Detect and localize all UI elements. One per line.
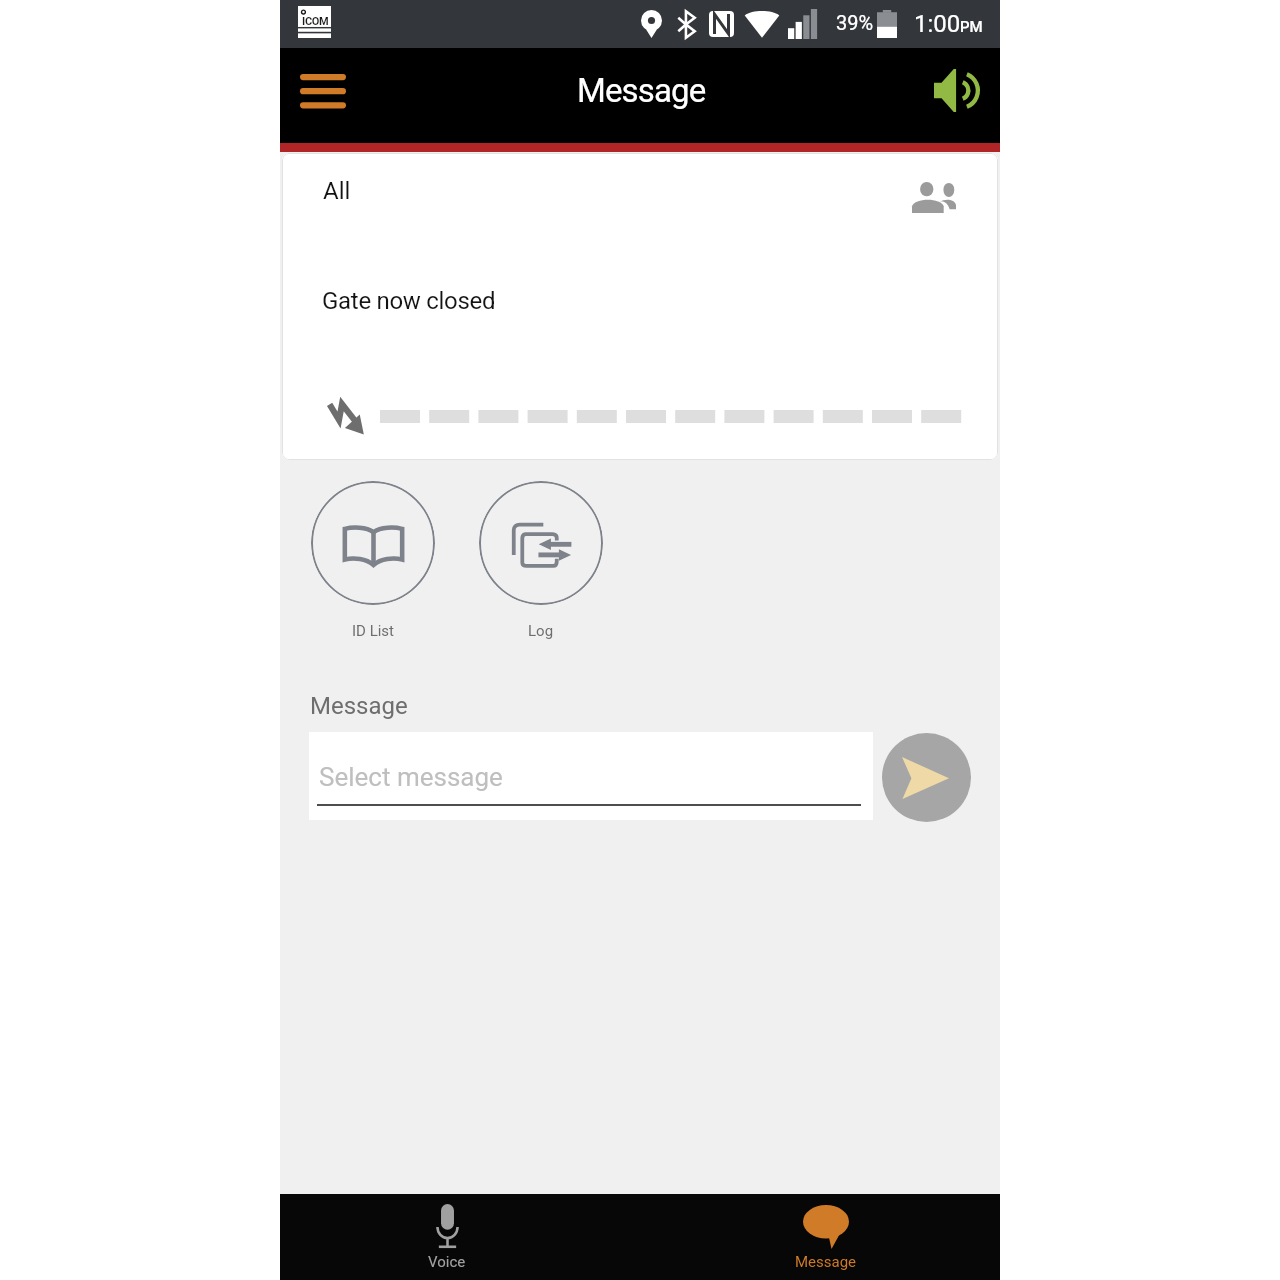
staticText: 39% [836, 11, 874, 34]
staticText: Message [310, 692, 408, 720]
staticText: Select message [319, 762, 503, 792]
staticText: Message [795, 1253, 857, 1271]
button[interactable]: Send [882, 733, 971, 822]
button[interactable]: Select group [896, 165, 972, 227]
staticText: PM [960, 18, 983, 36]
staticText: ID List [352, 622, 395, 640]
button[interactable]: Menu [284, 61, 362, 131]
staticText: Log [528, 622, 554, 640]
staticText: Gate now closed [322, 287, 496, 315]
button[interactable]: Message [706, 1194, 946, 1280]
staticText: Voice [428, 1253, 466, 1271]
staticText: All [323, 177, 351, 205]
button[interactable]: Voice [327, 1194, 567, 1280]
button[interactable]: Open log [479, 481, 603, 605]
staticText: 1:00 [914, 10, 961, 38]
button[interactable]: Open ID list [311, 481, 435, 605]
staticText: ICOM [302, 15, 329, 28]
button[interactable]: Speaker volume [920, 61, 994, 131]
button[interactable]: All [282, 153, 998, 460]
button[interactable]: Select message [309, 732, 873, 820]
staticText: Message [577, 71, 706, 110]
